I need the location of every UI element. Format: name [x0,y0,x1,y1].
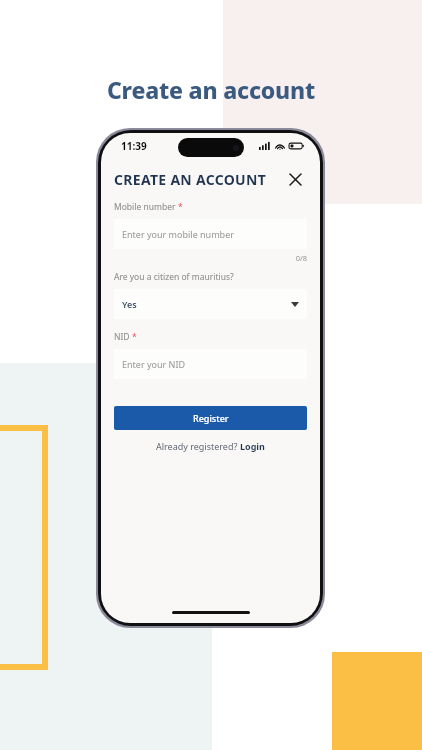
staticText: Already registered? [156,440,240,452]
staticText: 11:39 [121,139,147,153]
staticText: * [178,201,183,213]
staticText: * [132,331,137,343]
staticText: NID [114,331,130,343]
button[interactable]: Close [283,167,307,191]
staticText: Are you a citizen of mauritius? [114,271,234,283]
button[interactable]: Register [114,406,307,430]
staticText: Enter your mobile number [122,228,234,240]
staticText: Create an account [0,74,422,105]
button[interactable]: Already registered? [114,440,307,452]
button[interactable]: Enter your mobile number [114,219,307,249]
staticText: CREATE AN ACCOUNT [114,170,283,189]
staticText: Register [193,412,229,424]
button[interactable]: Yes [114,289,307,319]
staticText: Mobile number [114,201,176,213]
staticText: Yes [122,298,137,310]
button[interactable]: Enter your NID [114,349,307,379]
staticText: 0/8 [114,253,307,263]
staticText: Login [240,440,265,452]
staticText: Enter your NID [122,358,186,370]
